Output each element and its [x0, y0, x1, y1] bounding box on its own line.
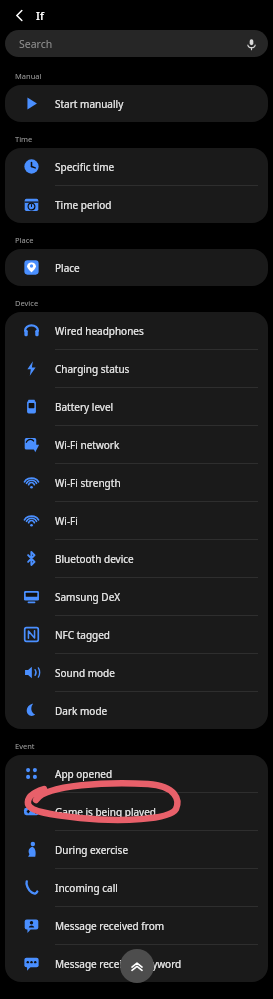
button[interactable]: Start manually: [5, 85, 268, 122]
button[interactable]: During exercise: [5, 831, 268, 868]
button[interactable]: Charging status: [5, 350, 268, 387]
button[interactable]: Incoming call: [5, 869, 268, 906]
button[interactable]: Battery level: [5, 388, 268, 425]
staticText: Device: [15, 298, 39, 308]
staticText: If: [36, 8, 44, 23]
staticText: Manual: [15, 71, 42, 81]
button[interactable]: Message received keyword: [5, 945, 268, 982]
button[interactable]: Time period: [5, 186, 268, 223]
button[interactable]: NFC tagged: [5, 616, 268, 653]
staticText: Dark mode: [55, 704, 108, 718]
staticText: Wi-Fi: [55, 514, 78, 528]
staticText: Start manually: [55, 97, 124, 111]
button[interactable]: Wi-Fi strength: [5, 464, 268, 501]
staticText: Wi-Fi network: [55, 438, 120, 452]
button[interactable]: Specific time: [5, 148, 268, 185]
staticText: During exercise: [55, 843, 129, 857]
staticText: Bluetooth device: [55, 552, 134, 566]
button[interactable]: Samsung DeX: [5, 578, 268, 615]
staticText: Time: [15, 134, 33, 144]
button[interactable]: Sound mode: [5, 654, 268, 691]
staticText: Place: [55, 261, 80, 275]
staticText: Samsung DeX: [55, 590, 121, 604]
button[interactable]: Bluetooth device: [5, 540, 268, 577]
button[interactable]: Dark mode: [5, 692, 268, 729]
staticText: Message received from: [55, 919, 165, 933]
staticText: Message received keyword: [55, 957, 182, 971]
staticText: NFC tagged: [55, 628, 111, 642]
button[interactable]: Wi-Fi network: [5, 426, 268, 463]
button[interactable]: Back: [6, 2, 32, 28]
staticText: Specific time: [55, 160, 115, 174]
staticText: Time period: [55, 198, 112, 212]
staticText: Incoming call: [55, 881, 118, 895]
staticText: Place: [15, 235, 34, 245]
button[interactable]: Wired headphones: [5, 312, 268, 349]
staticText: Battery level: [55, 400, 114, 414]
staticText: Wired headphones: [55, 324, 144, 338]
button[interactable]: App opened: [5, 755, 268, 792]
staticText: App opened: [55, 767, 113, 781]
staticText: Game is being played: [55, 805, 156, 819]
staticText: Charging status: [55, 362, 130, 376]
button[interactable]: Search: [5, 30, 268, 57]
staticText: Sound mode: [55, 666, 115, 680]
button[interactable]: Message received from: [5, 907, 268, 944]
button[interactable]: Game is being played: [5, 793, 268, 830]
staticText: Event: [15, 741, 35, 751]
button[interactable]: Place: [5, 249, 268, 286]
button[interactable]: Scroll to top: [120, 949, 154, 983]
staticText: Wi-Fi strength: [55, 476, 121, 490]
button[interactable]: Wi-Fi: [5, 502, 268, 539]
staticText: Search: [19, 37, 53, 51]
